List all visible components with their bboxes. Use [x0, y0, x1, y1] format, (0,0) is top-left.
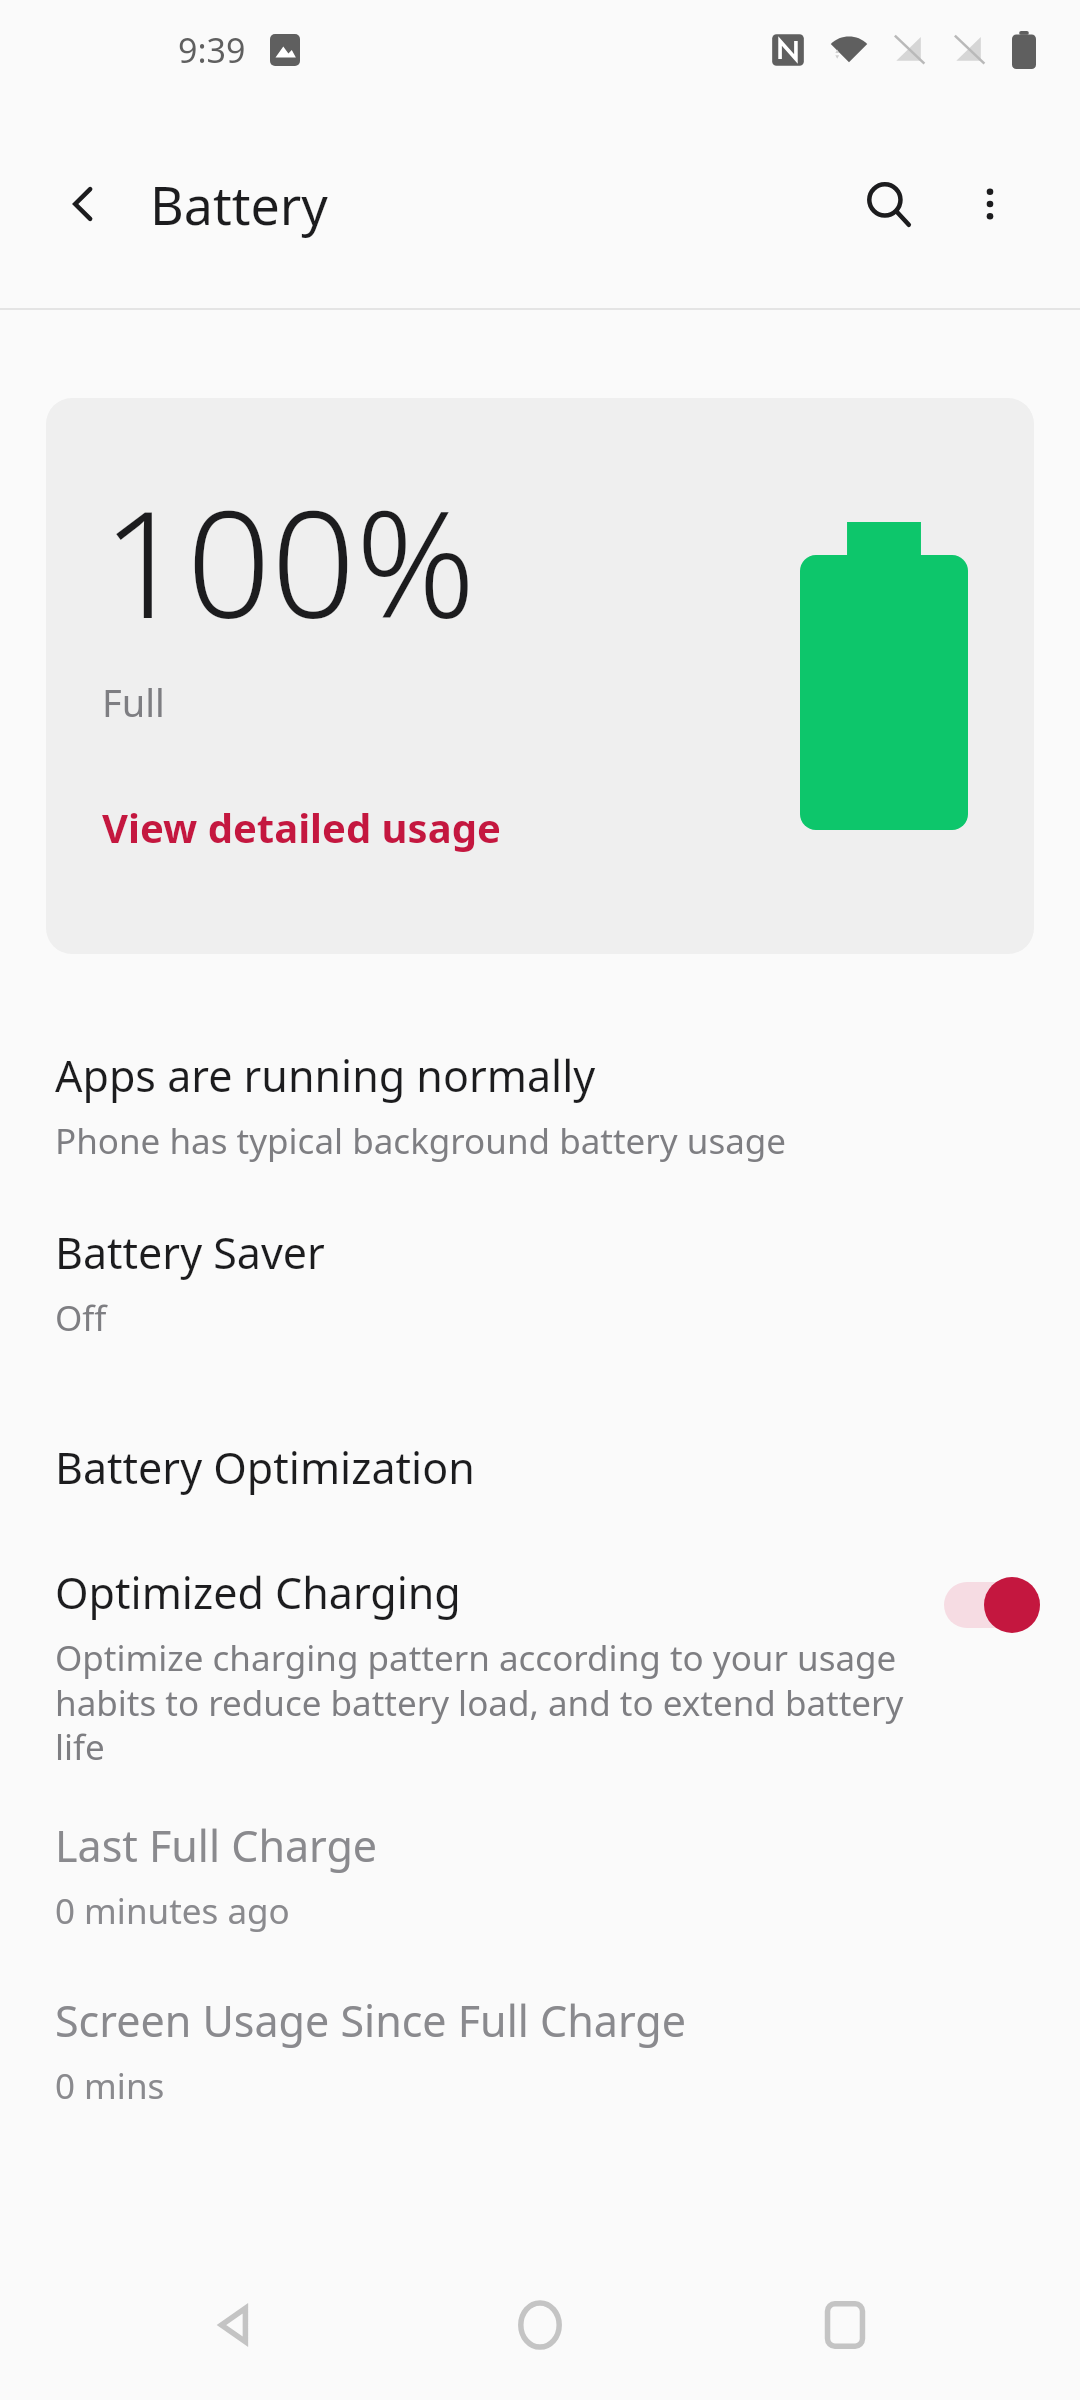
staticText: Phone has typical background battery usa…	[55, 1117, 787, 1165]
staticText: 100%	[102, 460, 476, 662]
staticText: 0 mins	[55, 2062, 165, 2110]
staticText: Apps are running normally	[55, 1046, 596, 1105]
button[interactable]: Battery Optimization	[0, 1438, 1080, 1497]
staticText: Off	[55, 1294, 107, 1342]
button[interactable]: 100%	[46, 398, 1034, 954]
button[interactable]: Screen Usage Since Full Charge	[0, 1991, 1080, 2110]
staticText: Optimize charging pattern according to y…	[55, 1634, 928, 1770]
button[interactable]: Back	[165, 2255, 305, 2395]
staticText: Screen Usage Since Full Charge	[55, 1991, 686, 2050]
button[interactable]: Battery Saver	[0, 1223, 1080, 1342]
staticText: Battery Optimization	[55, 1438, 475, 1497]
staticText: 0 minutes ago	[55, 1887, 290, 1935]
staticText: Battery Saver	[55, 1223, 325, 1282]
staticText: Optimized Charging	[55, 1563, 461, 1622]
staticText: Last Full Charge	[55, 1816, 378, 1875]
button[interactable]: Recent apps	[775, 2255, 915, 2395]
staticText: Battery	[150, 169, 328, 240]
staticText: Full	[102, 676, 165, 728]
staticText: View detailed usage	[102, 800, 501, 854]
button[interactable]: View detailed usage	[102, 800, 501, 854]
button[interactable]: More options	[944, 158, 1036, 250]
button[interactable]: Optimized Charging toggle, on	[944, 1577, 1040, 1633]
button[interactable]: Last Full Charge	[0, 1816, 1080, 1935]
button[interactable]: Optimized Charging	[0, 1563, 1080, 1770]
button[interactable]: Home	[470, 2255, 610, 2395]
staticText: 9:39	[178, 27, 246, 73]
button[interactable]: Back	[44, 164, 124, 244]
button[interactable]: Search	[842, 158, 934, 250]
button[interactable]: Apps are running normally	[0, 1046, 1080, 1165]
